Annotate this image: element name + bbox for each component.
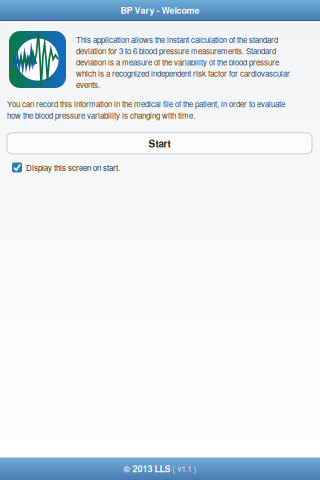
staticText: © 2013 LLS (123, 462, 170, 475)
staticText: You can record this information in the m… (7, 98, 285, 121)
staticText: ( v1.1 ) (172, 463, 196, 474)
button[interactable]: Start (0, 121, 320, 154)
staticText: This application allows the instant calc… (76, 34, 290, 90)
button[interactable]: Display this screen on start. (0, 154, 320, 173)
staticText: BP Vary - Welcome (120, 4, 199, 16)
staticText: Start (148, 136, 170, 150)
staticText: Display this screen on start. (26, 162, 120, 173)
